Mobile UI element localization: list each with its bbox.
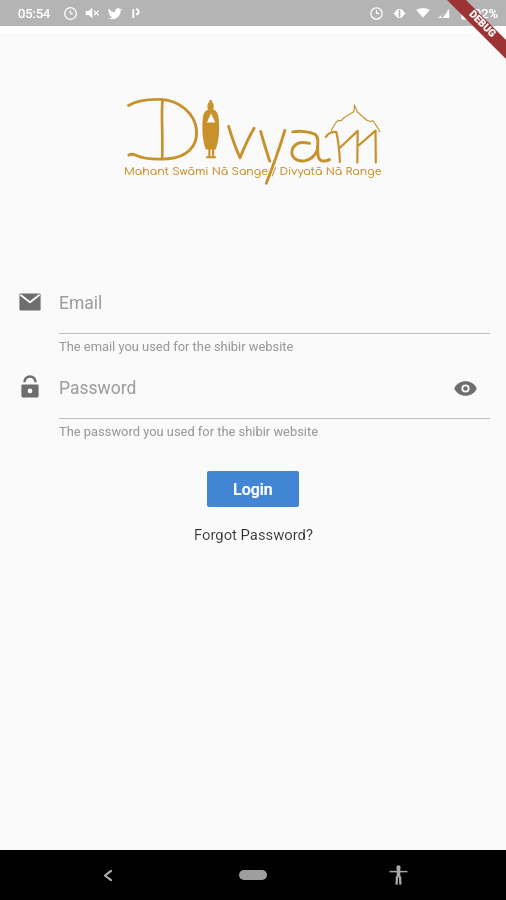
staticText: Login (233, 480, 273, 499)
staticText: Email (59, 293, 103, 314)
button[interactable]: Forgot Password? (186, 522, 321, 547)
staticText: The password you used for the shibir web… (59, 424, 319, 439)
staticText: DEBUG (467, 8, 498, 40)
button[interactable]: Accessibility (370, 850, 426, 900)
staticText: 92% (474, 6, 499, 21)
staticText: Password (59, 378, 137, 399)
button[interactable]: Home (225, 850, 281, 900)
staticText: Mahant Swāmi Nā Sange / Divyatā Nā Range (124, 165, 382, 177)
staticText: 05:54 (18, 6, 51, 21)
button[interactable]: Login (207, 471, 299, 507)
button[interactable]: Back (80, 850, 136, 900)
staticText: Forgot Password? (194, 526, 313, 543)
button[interactable]: Show password (448, 371, 482, 405)
staticText: The email you used for the shibir websit… (59, 339, 294, 354)
